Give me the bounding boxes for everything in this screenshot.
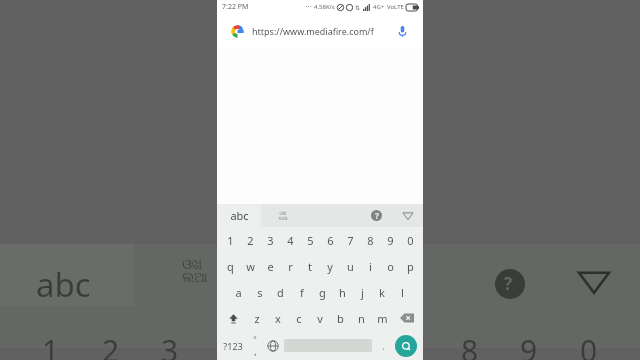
button[interactable]: ° — [246, 331, 264, 360]
staticText: ⇅ — [355, 4, 361, 11]
staticText: ?123 — [223, 340, 243, 352]
staticText: 5 — [307, 233, 314, 248]
staticText: 4 — [221, 330, 239, 360]
button[interactable]: Voice search — [396, 25, 409, 38]
button[interactable]: n — [351, 305, 372, 331]
button[interactable]: j — [352, 279, 372, 305]
staticText: ? — [504, 272, 513, 295]
staticText: ଓଖ ଲଆ — [182, 258, 208, 285]
staticText: u — [347, 259, 354, 274]
staticText: 9 — [520, 330, 538, 360]
staticText: 7 — [347, 233, 354, 248]
button[interactable]: i — [360, 253, 380, 279]
staticText: a — [235, 285, 242, 300]
staticText: 8 — [367, 233, 374, 248]
button[interactable]: c — [288, 305, 309, 331]
button[interactable]: t — [300, 253, 320, 279]
staticText: g — [319, 285, 326, 300]
button[interactable]: x — [267, 305, 288, 331]
button[interactable]: 3 — [260, 227, 280, 253]
button[interactable]: z — [246, 305, 267, 331]
button[interactable]: h — [332, 279, 352, 305]
button[interactable]: y — [320, 253, 340, 279]
button[interactable]: v — [309, 305, 330, 331]
staticText: 7 — [401, 330, 419, 360]
staticText: 9 — [387, 233, 394, 248]
staticText: abc — [230, 208, 249, 223]
staticText: q — [227, 259, 234, 274]
button[interactable]: o — [380, 253, 400, 279]
button[interactable]: k — [372, 279, 392, 305]
staticText: c — [296, 311, 302, 326]
staticText: 8 — [461, 330, 479, 360]
staticText: r — [288, 259, 293, 274]
button[interactable]: 7 — [340, 227, 360, 253]
staticText: 6 — [341, 330, 359, 360]
staticText: https://www.mediafire.com/f — [252, 25, 392, 37]
staticText: 0 — [580, 330, 598, 360]
staticText: n — [358, 311, 365, 326]
staticText: 4.58K/s — [314, 3, 335, 11]
staticText: o — [387, 259, 394, 274]
button[interactable]: 0 — [400, 227, 420, 253]
button[interactable]: p — [400, 253, 420, 279]
staticText: s — [257, 285, 263, 300]
button[interactable]: u — [340, 253, 360, 279]
staticText: VoLTE — [387, 3, 404, 11]
button[interactable]: Shift — [220, 305, 246, 331]
staticText: p — [407, 259, 414, 274]
button[interactable]: r — [280, 253, 300, 279]
staticText: l — [401, 285, 404, 300]
staticText: 6 — [327, 233, 334, 248]
button[interactable]: 6 — [320, 227, 340, 253]
button[interactable]: Change language — [264, 331, 282, 360]
button[interactable]: s — [249, 279, 270, 305]
button[interactable]: 8 — [360, 227, 380, 253]
button[interactable]: Help — [365, 204, 388, 227]
button[interactable]: 4 — [280, 227, 300, 253]
button[interactable]: . — [374, 331, 392, 360]
staticText: 2 — [102, 330, 120, 360]
staticText: m — [377, 311, 388, 326]
button[interactable]: 5 — [300, 227, 320, 253]
button[interactable]: e — [260, 253, 280, 279]
staticText: , — [254, 345, 257, 357]
staticText: t — [308, 259, 312, 274]
staticText: 3 — [161, 330, 179, 360]
button[interactable]: a — [228, 279, 249, 305]
staticText: j — [361, 285, 364, 300]
button[interactable]: 1 — [220, 227, 240, 253]
button[interactable]: Backspace — [393, 305, 420, 331]
staticText: 4 — [287, 233, 294, 248]
staticText: h — [339, 285, 346, 300]
button[interactable]: l — [392, 279, 412, 305]
button[interactable]: abc — [217, 204, 261, 227]
button[interactable]: w — [240, 253, 260, 279]
button[interactable]: g — [312, 279, 332, 305]
staticText: ଓଖ ଲଆ — [278, 211, 288, 221]
button[interactable]: 2 — [240, 227, 260, 253]
staticText: d — [277, 285, 284, 300]
staticText: 1 — [42, 330, 60, 360]
staticText: 3 — [267, 233, 274, 248]
staticText: . — [382, 339, 385, 353]
button[interactable]: 9 — [380, 227, 400, 253]
button[interactable]: f — [291, 279, 312, 305]
staticText: i — [369, 259, 372, 274]
staticText: ⋯ — [305, 3, 312, 11]
button[interactable]: https://www.mediafire.com/f — [224, 18, 416, 44]
button[interactable]: Hide keyboard — [396, 204, 419, 227]
staticText: k — [379, 285, 385, 300]
staticText: w — [246, 259, 255, 274]
button[interactable]: q — [220, 253, 240, 279]
staticText: 2 — [247, 233, 254, 248]
button[interactable]: Search — [395, 335, 417, 357]
button[interactable]: d — [270, 279, 291, 305]
staticText: 1 — [227, 233, 234, 248]
staticText: ° — [253, 334, 257, 345]
button[interactable]: m — [372, 305, 393, 331]
button[interactable]: b — [330, 305, 351, 331]
button[interactable]: Language — [261, 204, 305, 227]
button[interactable]: ?123 — [220, 331, 246, 360]
